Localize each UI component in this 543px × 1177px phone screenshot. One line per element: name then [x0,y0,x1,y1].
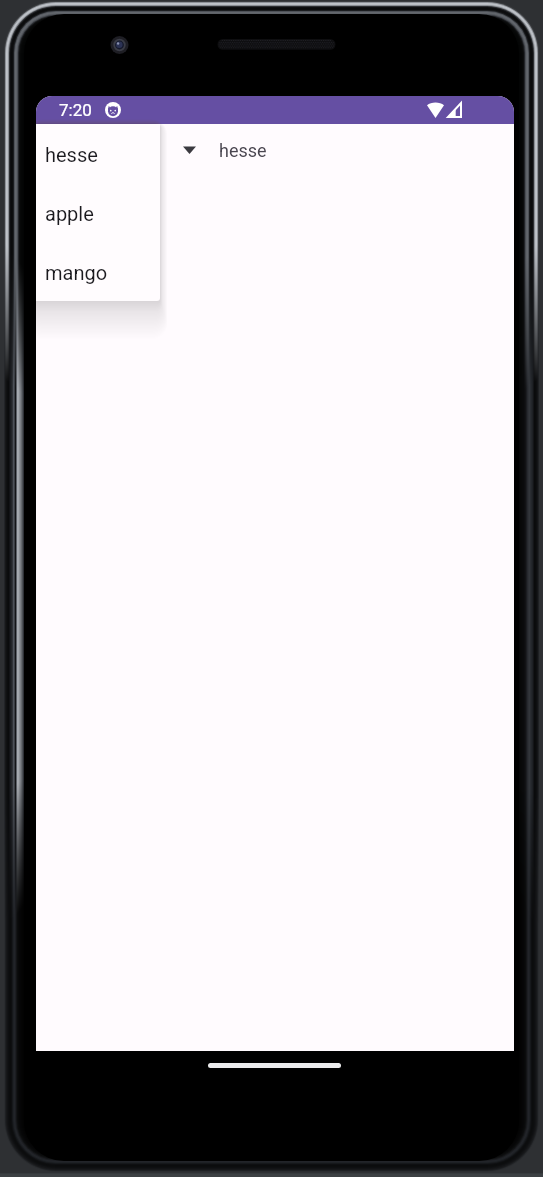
other: App notification [105,102,121,118]
button[interactable]: Open dropdown [36,124,514,176]
button[interactable]: apple [36,183,160,242]
staticText: hesse [219,140,267,161]
staticText: mango [45,261,108,284]
button[interactable]: mango [36,242,160,301]
staticText: apple [45,202,94,225]
other: Open dropdown [183,146,196,154]
button[interactable]: hesse [36,124,160,183]
staticText: hesse [45,143,98,166]
staticText: 7:20 [59,100,92,120]
